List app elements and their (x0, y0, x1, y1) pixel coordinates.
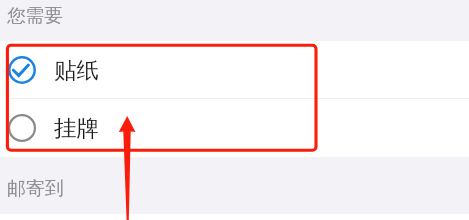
staticText: 邮寄到 (7, 177, 64, 201)
button[interactable]: Selected 贴纸 (0, 41, 469, 98)
other: Select 挂牌 (9, 115, 35, 141)
button[interactable]: Select 挂牌 (0, 99, 469, 157)
staticText: 您需要 (7, 4, 63, 27)
staticText: 贴纸 (54, 56, 99, 84)
other: Selected 贴纸 (9, 57, 35, 83)
staticText: 挂牌 (54, 114, 99, 142)
